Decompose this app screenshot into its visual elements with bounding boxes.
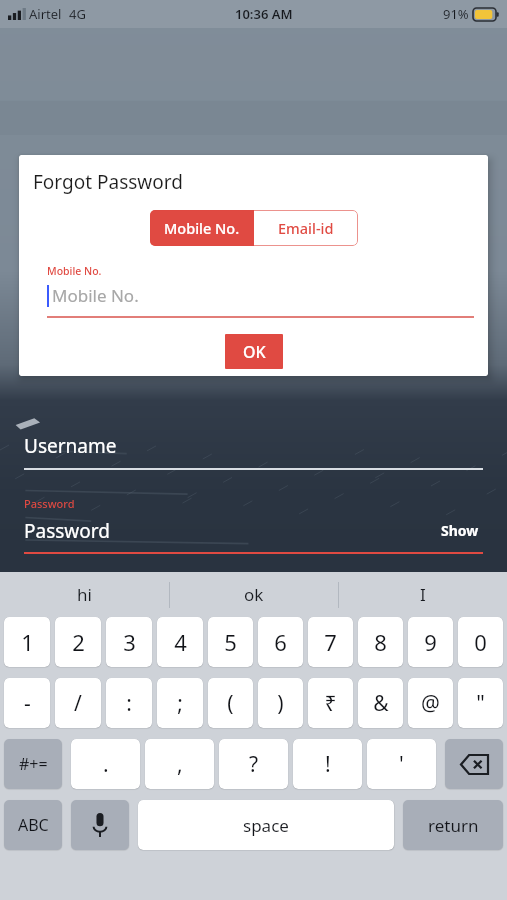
button[interactable]: Email-id (254, 210, 358, 246)
button[interactable]: 5 (208, 617, 253, 667)
staticText: 10:36 AM (235, 5, 293, 23)
button[interactable]: ' (367, 739, 436, 789)
staticText: 1 (21, 627, 34, 657)
staticText: ok (244, 583, 264, 606)
staticText: Password (24, 518, 110, 544)
staticText: 2 (72, 627, 85, 657)
staticText: Forgot Password (33, 169, 183, 195)
staticText: ABC (18, 814, 49, 836)
button[interactable]: 2 (55, 617, 101, 667)
staticText: return (428, 814, 479, 837)
button[interactable]: Mobile No. (47, 284, 474, 307)
staticText: ' (399, 750, 404, 779)
staticText: . (103, 750, 109, 779)
button[interactable]: 8 (358, 617, 403, 667)
staticText: 8 (374, 627, 387, 657)
staticText: 6 (274, 627, 287, 657)
button[interactable]: 4 (157, 617, 203, 667)
button[interactable]: hi (0, 572, 169, 617)
button[interactable]: space (138, 800, 394, 850)
staticText: - (24, 689, 31, 718)
staticText: Username (24, 433, 117, 459)
staticText: 5 (224, 627, 237, 657)
button[interactable]: 7 (308, 617, 353, 667)
staticText: ; (177, 689, 183, 718)
staticText: " (476, 689, 485, 718)
staticText: & (373, 689, 389, 718)
staticText: ) (277, 689, 284, 718)
button[interactable]: : (106, 678, 152, 728)
button[interactable]: ABC (4, 800, 62, 850)
staticText: Mobile No. (52, 284, 139, 307)
staticText: / (74, 689, 82, 718)
button[interactable]: return (403, 800, 503, 850)
staticText: 0 (474, 627, 487, 657)
staticText: OK (243, 341, 266, 363)
staticText: space (243, 814, 289, 837)
staticText: 4G (69, 5, 86, 23)
button[interactable]: Voice input (71, 800, 129, 850)
staticText: Show (441, 521, 479, 540)
staticText: ! (325, 750, 331, 779)
staticText: ? (249, 750, 259, 779)
button[interactable]: Backspace (445, 739, 503, 789)
staticText: #+= (19, 753, 48, 775)
button[interactable]: & (358, 678, 403, 728)
button[interactable]: OK (225, 334, 283, 369)
button[interactable]: ok (170, 572, 338, 617)
button[interactable]: #+= (4, 739, 62, 789)
button[interactable]: ( (208, 678, 253, 728)
staticText: Mobile No. (47, 264, 102, 278)
button[interactable]: ? (219, 739, 288, 789)
staticText: 4 (174, 627, 187, 657)
button[interactable]: 3 (106, 617, 152, 667)
button[interactable]: ) (258, 678, 303, 728)
staticText: I (420, 583, 426, 606)
button[interactable]: ; (157, 678, 203, 728)
staticText: , (177, 750, 183, 779)
staticText: Airtel (29, 5, 62, 23)
staticText: Email-id (278, 218, 334, 238)
button[interactable]: / (55, 678, 101, 728)
staticText: ₹ (324, 689, 337, 718)
staticText: ( (227, 689, 234, 718)
button[interactable]: Mobile No. (150, 210, 254, 246)
button[interactable]: - (4, 678, 50, 728)
staticText: hi (77, 583, 92, 606)
button[interactable]: I (339, 572, 507, 617)
button[interactable]: Forgot Password? (24, 568, 483, 590)
button[interactable]: 6 (258, 617, 303, 667)
staticText: Password (24, 496, 75, 511)
button[interactable]: 1 (4, 617, 50, 667)
button[interactable]: , (145, 739, 214, 789)
staticText: 7 (324, 627, 337, 657)
staticText: Mobile No. (164, 218, 240, 238)
staticText: 9 (424, 627, 437, 657)
button[interactable]: Show (437, 517, 483, 544)
staticText: : (126, 689, 132, 718)
staticText: 91% (443, 5, 469, 23)
button[interactable]: . (71, 739, 140, 789)
staticText: @ (421, 689, 440, 718)
staticText: 3 (123, 627, 136, 657)
button[interactable]: 9 (408, 617, 453, 667)
button[interactable]: ! (293, 739, 362, 789)
staticText: Forgot Password? (347, 568, 483, 590)
button[interactable]: 0 (458, 617, 503, 667)
button[interactable]: " (458, 678, 503, 728)
button[interactable]: ₹ (308, 678, 353, 728)
button[interactable]: @ (408, 678, 453, 728)
